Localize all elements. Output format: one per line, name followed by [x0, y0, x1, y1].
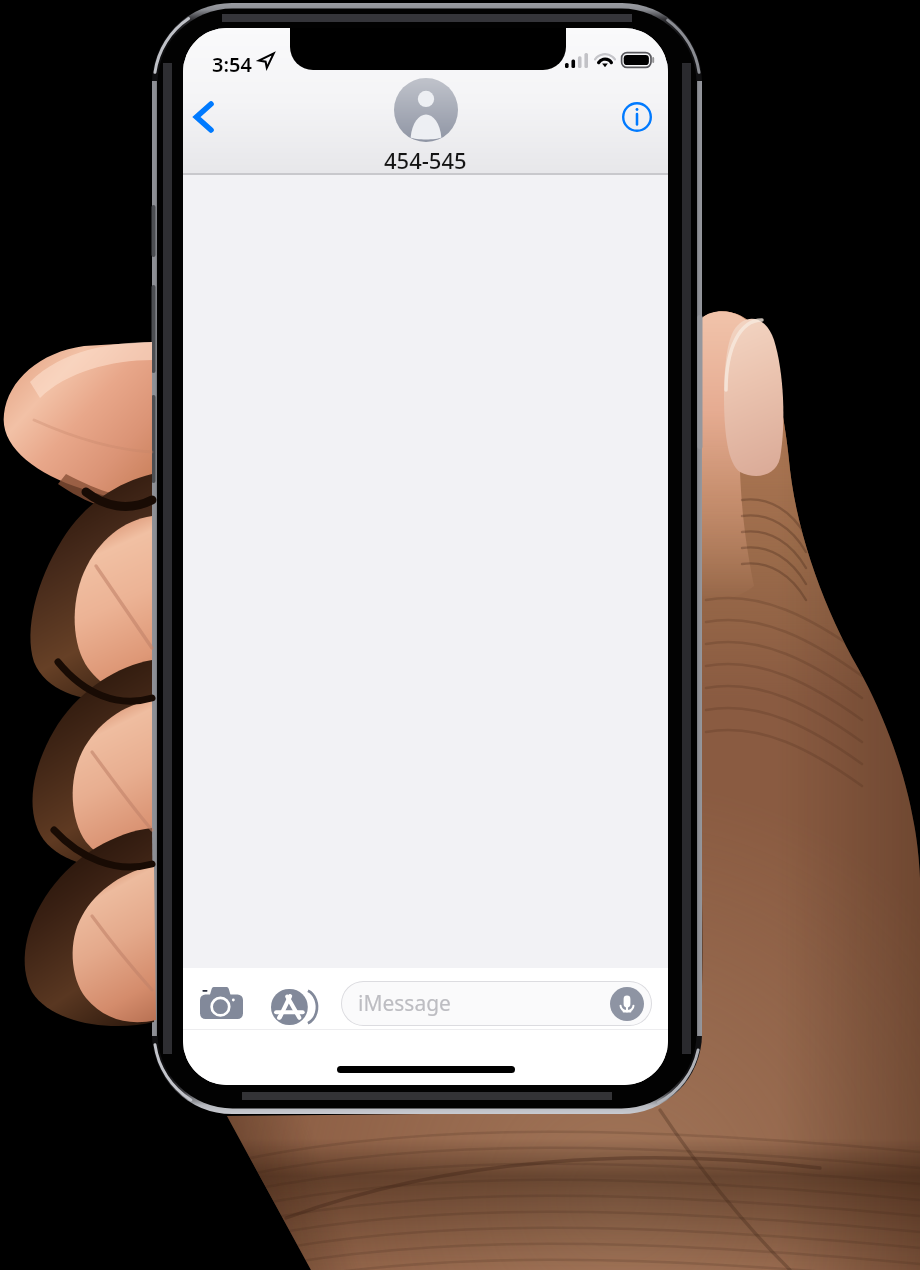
button[interactable]: 454-545	[384, 78, 467, 175]
button[interactable]: Back	[183, 95, 225, 139]
staticText: 3:54	[212, 51, 252, 78]
staticText: 454-545	[384, 145, 467, 175]
button[interactable]: Details	[615, 95, 659, 139]
button[interactable]: Camera	[196, 983, 246, 1023]
button[interactable]: Dictate	[609, 986, 645, 1022]
button[interactable]: iMessage	[341, 981, 652, 1026]
button[interactable]: App Store	[268, 981, 319, 1032]
staticText: iMessage	[358, 989, 451, 1018]
